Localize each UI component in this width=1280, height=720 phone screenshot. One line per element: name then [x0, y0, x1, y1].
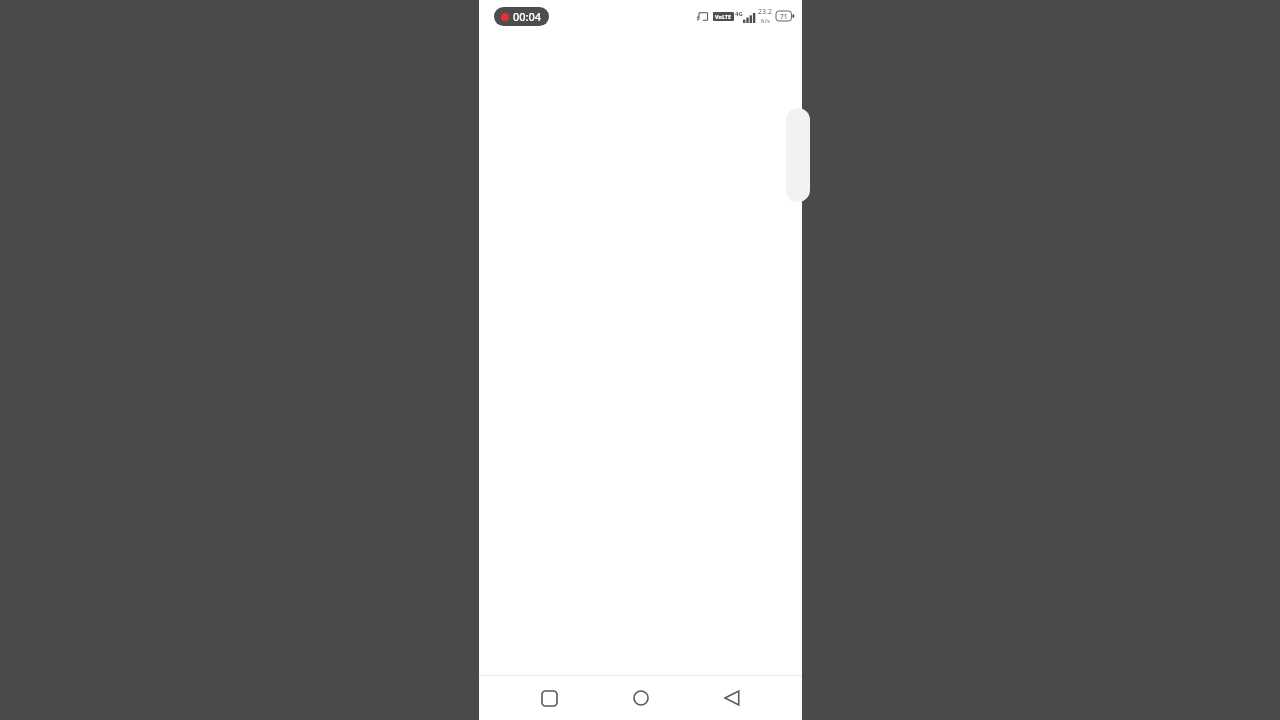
staticText: K/s [761, 17, 770, 25]
staticText: 12: [493, 9, 509, 24]
button[interactable]: Recent apps [527, 676, 571, 720]
staticText: 23.2 [758, 7, 772, 17]
button[interactable]: Back [710, 676, 754, 720]
staticText: VoLTE [715, 13, 732, 20]
staticText: 4G [735, 10, 743, 18]
button[interactable]: Home [619, 676, 663, 720]
staticText: 71 [780, 12, 788, 21]
button[interactable]: 00:04 [494, 7, 549, 26]
staticText: 00:04 [513, 9, 542, 24]
